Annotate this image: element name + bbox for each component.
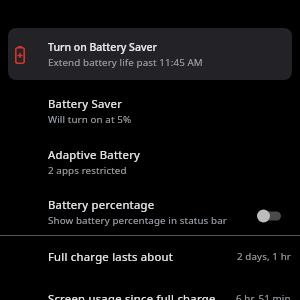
staticText: 2 days, 1 hr	[237, 250, 291, 263]
staticText: Full charge lasts about	[48, 249, 174, 264]
staticText: Battery percentage	[48, 197, 155, 212]
button[interactable]: Adaptive Battery	[0, 137, 300, 187]
staticText: 2 apps restricted	[48, 164, 127, 177]
staticText: Screen usage since full charge	[48, 291, 216, 300]
button[interactable]: Battery percentage	[0, 189, 300, 235]
button[interactable]: Screen usage since full charge	[0, 279, 300, 300]
staticText: Adaptive Battery	[48, 147, 141, 162]
staticText: Will turn on at 5%	[48, 113, 132, 126]
staticText: Battery Saver	[48, 96, 123, 111]
staticText: Show battery percentage in status bar	[48, 214, 227, 227]
staticText: Extend battery life past 11:45 AM	[48, 56, 203, 69]
button[interactable]: Turn on Battery Saver	[8, 28, 292, 80]
staticText: Turn on Battery Saver	[48, 40, 157, 54]
button[interactable]: Full charge lasts about	[0, 237, 300, 276]
staticText: 6 hr, 51 min	[236, 292, 291, 300]
button[interactable]: Battery Saver	[0, 86, 300, 136]
